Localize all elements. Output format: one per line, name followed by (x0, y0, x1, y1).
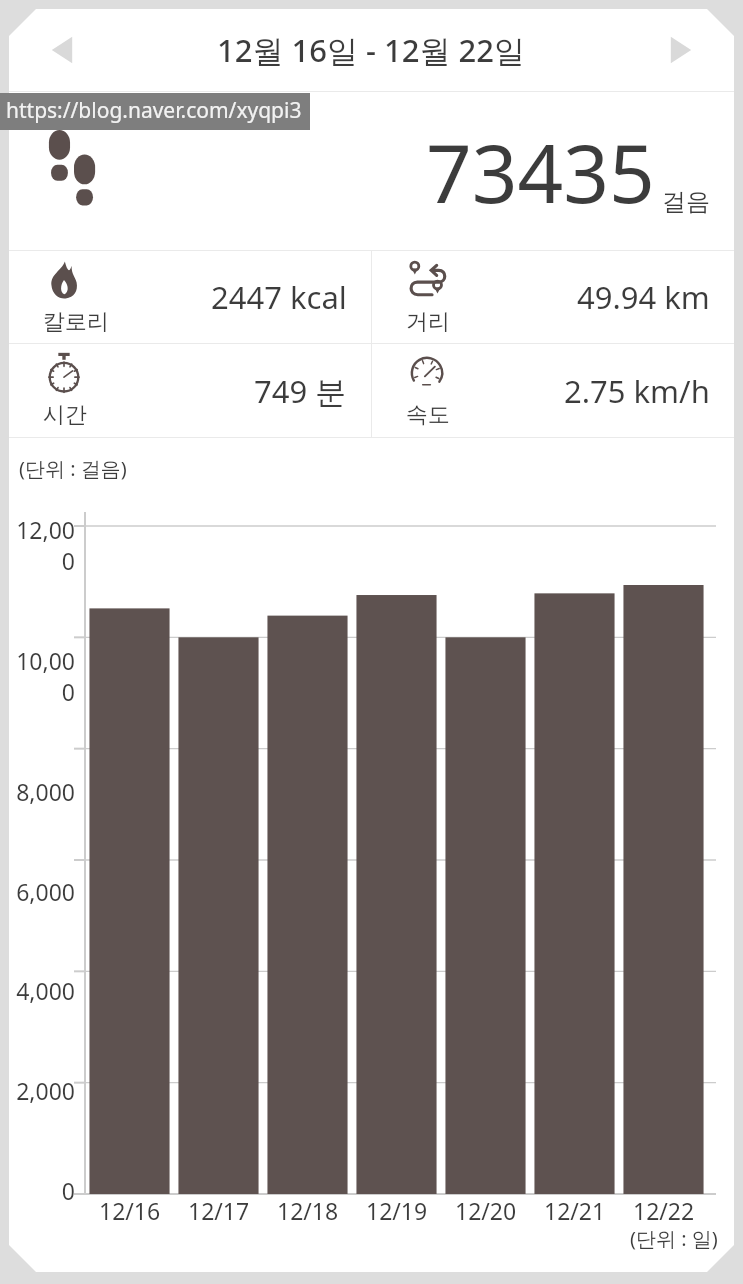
staticText: 12/16 (99, 1195, 161, 1226)
staticText: 10,000 (9, 645, 75, 707)
staticText: 2,000 (9, 1075, 75, 1106)
staticText: 2447 kcal (211, 276, 347, 318)
staticText: 73435 (426, 117, 655, 226)
staticText: 속도 (406, 401, 450, 429)
staticText: 0 (9, 1175, 75, 1206)
button[interactable]: Next week (648, 20, 708, 80)
button[interactable]: 칼로리 (9, 251, 371, 343)
staticText: 2.75 km/h (564, 370, 710, 412)
staticText: 시간 (43, 401, 87, 429)
staticText: 749 분 (254, 370, 347, 412)
button[interactable]: 73435 (9, 92, 734, 250)
staticText: 12/17 (188, 1195, 250, 1226)
staticText: 12/22 (633, 1195, 695, 1226)
button[interactable]: 거리 (372, 251, 734, 343)
staticText: 6,000 (9, 876, 75, 907)
button[interactable]: 속도 (372, 344, 734, 437)
staticText: (단위 : 걸음) (19, 455, 127, 482)
staticText: (단위 : 일) (630, 1225, 718, 1252)
staticText: 걸음 (662, 187, 710, 217)
staticText: 12/19 (366, 1195, 428, 1226)
staticText: 칼로리 (43, 308, 109, 336)
staticText: 12/18 (277, 1195, 339, 1226)
staticText: 49.94 km (577, 276, 710, 318)
staticText: 12월 16일 - 12월 22일 (217, 29, 526, 71)
staticText: 거리 (406, 308, 450, 336)
button[interactable]: 시간 (9, 344, 371, 437)
staticText: 4,000 (9, 975, 75, 1006)
staticText: 12/20 (455, 1195, 517, 1226)
staticText: https://blog.naver.com/xyqpi3 (6, 96, 302, 125)
button[interactable]: Previous week (35, 20, 95, 80)
staticText: 12/21 (544, 1195, 606, 1226)
staticText: 8,000 (9, 776, 75, 807)
staticText: 12,000 (9, 514, 75, 576)
